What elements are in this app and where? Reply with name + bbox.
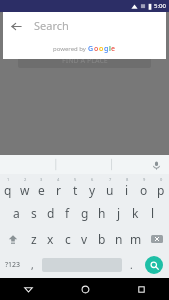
staticText: powered by	[53, 45, 88, 53]
staticText: q	[4, 182, 12, 198]
button[interactable]: a	[8, 200, 25, 226]
staticText: 4	[57, 177, 60, 182]
staticText: 6	[91, 177, 94, 182]
staticText: l	[151, 205, 155, 221]
button[interactable]: l	[144, 200, 161, 226]
staticText: c	[65, 231, 71, 247]
staticText: g	[104, 44, 109, 54]
staticText: z	[31, 231, 37, 247]
staticText: o	[99, 44, 104, 54]
button[interactable]: v	[76, 226, 93, 252]
staticText: s	[31, 205, 37, 221]
staticText: f	[65, 205, 70, 221]
button[interactable]: Backspace	[144, 226, 169, 252]
staticText: i	[125, 182, 129, 198]
staticText: e	[111, 44, 116, 54]
staticText: e	[38, 182, 45, 198]
button[interactable]: f	[59, 200, 76, 226]
staticText: b	[98, 231, 106, 247]
button[interactable]: g	[76, 200, 93, 226]
button[interactable]: 9	[135, 174, 152, 200]
staticText: g	[81, 205, 89, 221]
button[interactable]: Voice input	[149, 158, 163, 172]
button[interactable]: 5	[67, 174, 84, 200]
button[interactable]: ,	[25, 252, 40, 278]
staticText: p	[157, 182, 165, 198]
staticText: 5:00	[154, 2, 166, 10]
staticText: 8	[126, 177, 129, 182]
staticText: j	[117, 205, 121, 221]
staticText: ,	[31, 258, 34, 272]
button[interactable]: 3	[33, 174, 50, 200]
staticText: G	[88, 44, 94, 54]
staticText: u	[106, 182, 114, 198]
button[interactable]: s	[25, 200, 42, 226]
staticText: 1	[7, 177, 10, 182]
button[interactable]: h	[93, 200, 110, 226]
button[interactable]: x	[42, 226, 59, 252]
staticText: ?123	[5, 260, 21, 270]
button[interactable]: Search	[145, 256, 163, 274]
staticText: 2	[24, 177, 27, 182]
staticText: w	[20, 182, 30, 198]
button[interactable]: ?123	[0, 252, 25, 278]
button[interactable]: k	[127, 200, 144, 226]
button[interactable]: d	[42, 200, 59, 226]
button[interactable]: Home	[57, 278, 113, 300]
staticText: FIND A PLACE	[62, 56, 108, 66]
staticText: 7	[109, 177, 112, 182]
button[interactable]: Back	[3, 13, 29, 39]
button[interactable]: 2	[16, 174, 33, 200]
button[interactable]: 6	[84, 174, 101, 200]
button[interactable]: j	[110, 200, 127, 226]
button[interactable]: z	[25, 226, 42, 252]
staticText: .	[130, 258, 133, 272]
button[interactable]: 0	[152, 174, 169, 200]
staticText: a	[13, 205, 20, 221]
button[interactable]: n	[110, 226, 127, 252]
staticText: 3	[40, 177, 43, 182]
staticText: r	[56, 182, 61, 198]
button[interactable]: 1	[0, 174, 16, 200]
button[interactable]: Back	[3, 12, 166, 39]
staticText: 5	[74, 177, 77, 182]
staticText: v	[81, 231, 88, 247]
staticText: h	[98, 205, 106, 221]
staticText: Search	[34, 18, 69, 33]
staticText: d	[47, 205, 55, 221]
button[interactable]: .	[124, 252, 139, 278]
button[interactable]: Shift	[0, 226, 25, 252]
staticText: k	[132, 205, 139, 221]
staticText: 0	[160, 177, 163, 182]
staticText: x	[47, 231, 54, 247]
staticText: o	[140, 182, 148, 198]
button[interactable]: m	[127, 226, 144, 252]
button[interactable]: b	[93, 226, 110, 252]
staticText: m	[130, 231, 142, 247]
staticText: y	[89, 182, 96, 198]
button[interactable]: c	[59, 226, 76, 252]
staticText: 9	[143, 177, 146, 182]
staticText: l	[109, 44, 111, 54]
button[interactable]: Recents	[113, 278, 169, 300]
button[interactable]: 4	[50, 174, 67, 200]
staticText: o	[94, 44, 99, 54]
button[interactable]: Back	[0, 278, 57, 300]
button[interactable]: 8	[118, 174, 135, 200]
button[interactable]: 7	[101, 174, 118, 200]
staticText: t	[73, 182, 78, 198]
staticText: n	[115, 231, 123, 247]
